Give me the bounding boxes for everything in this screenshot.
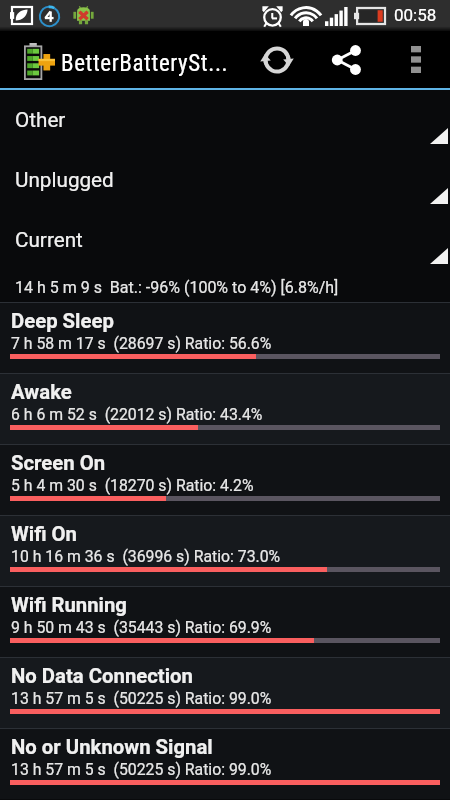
staticText: 6 h 6 m 52 s (22012 s) Ratio: 43.4% — [11, 405, 263, 424]
staticText: Unplugged — [15, 168, 114, 192]
button[interactable]: No Data Connection — [0, 657, 450, 728]
staticText: 13 h 57 m 5 s (50225 s) Ratio: 99.0% — [11, 760, 272, 779]
staticText: 13 h 57 m 5 s (50225 s) Ratio: 99.0% — [11, 689, 272, 708]
staticText: 9 h 50 m 43 s (35443 s) Ratio: 69.9% — [11, 618, 272, 637]
staticText: Deep Sleep — [11, 309, 114, 333]
staticText: Wifi On — [11, 522, 77, 546]
button[interactable]: More options — [391, 31, 441, 88]
button[interactable]: Wifi On — [0, 515, 450, 586]
staticText: Wifi Running — [11, 593, 127, 617]
staticText: Awake — [11, 380, 72, 404]
button[interactable]: Screen On — [0, 444, 450, 515]
button[interactable]: Unplugged — [0, 150, 450, 210]
staticText: No or Unknown Signal — [11, 735, 213, 759]
button[interactable]: Awake — [0, 373, 450, 444]
button[interactable]: Other — [0, 90, 450, 150]
staticText: Other — [15, 108, 66, 132]
staticText: Current — [15, 228, 83, 252]
staticText: 10 h 16 m 36 s (36996 s) Ratio: 73.0% — [11, 547, 281, 566]
button[interactable]: Refresh — [242, 31, 311, 88]
button[interactable]: Deep Sleep — [0, 302, 450, 373]
staticText: 14 h 5 m 9 s Bat.: -96% (100% to 4%) [6.… — [15, 278, 339, 297]
staticText: 7 h 58 m 17 s (28697 s) Ratio: 56.6% — [11, 334, 272, 353]
staticText: No Data Connection — [11, 664, 193, 688]
staticText: 00:58 — [394, 5, 437, 25]
staticText: Screen On — [11, 451, 106, 475]
staticText: 5 h 4 m 30 s (18270 s) Ratio: 4.2% — [11, 476, 254, 495]
button[interactable]: Share — [311, 31, 380, 88]
button[interactable]: No or Unknown Signal — [0, 728, 450, 799]
staticText: BetterBatterySt... — [61, 50, 229, 77]
button[interactable]: Current — [0, 210, 450, 270]
button[interactable]: Wifi Running — [0, 586, 450, 657]
